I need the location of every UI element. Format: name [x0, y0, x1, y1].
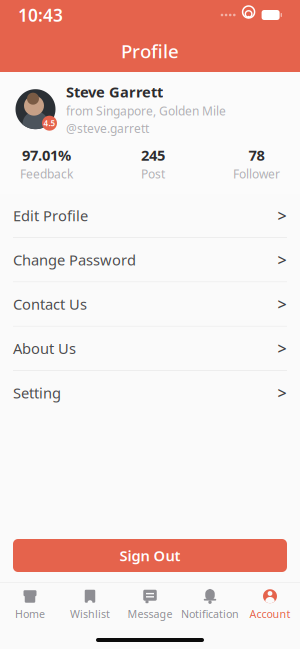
staticText: Message: [127, 607, 172, 621]
staticText: Setting: [13, 383, 61, 402]
staticText: >: [277, 249, 286, 270]
staticText: Account: [249, 607, 290, 621]
staticText: 245: [141, 145, 165, 165]
staticText: @steve.garrett: [66, 120, 149, 136]
staticText: >: [277, 205, 286, 226]
staticText: Contact Us: [13, 294, 87, 314]
button[interactable]: Wishlist: [60, 587, 120, 623]
staticText: Post: [141, 166, 165, 182]
button[interactable]: Home: [0, 587, 60, 623]
staticText: Notification: [181, 607, 239, 621]
staticText: Wishlist: [70, 607, 110, 621]
staticText: Profile: [121, 39, 179, 63]
staticText: Sign Out: [119, 546, 180, 565]
staticText: About Us: [13, 339, 76, 358]
staticText: Change Password: [13, 250, 136, 270]
staticText: Feedback: [20, 166, 73, 182]
button[interactable]: Account: [240, 587, 300, 623]
staticText: 10:43: [18, 3, 63, 26]
button[interactable]: About Us: [0, 327, 300, 370]
button[interactable]: Setting: [0, 371, 300, 414]
staticText: Home: [15, 607, 45, 621]
button[interactable]: Edit Profile: [0, 194, 300, 237]
staticText: 4.5: [43, 118, 55, 128]
button[interactable]: Sign Out: [13, 539, 287, 572]
staticText: 97.01%: [22, 145, 71, 165]
staticText: Follower: [233, 166, 280, 182]
button[interactable]: Change Password: [0, 238, 300, 282]
staticText: >: [277, 293, 286, 315]
staticText: Steve Garrett: [66, 82, 163, 101]
button[interactable]: Contact Us: [0, 282, 300, 326]
staticText: 78: [248, 145, 264, 165]
staticText: >: [277, 382, 286, 403]
staticText: from Singapore, Golden Mile: [66, 103, 226, 119]
staticText: >: [277, 338, 286, 359]
button[interactable]: Notification: [180, 587, 240, 623]
button[interactable]: Message: [120, 587, 180, 623]
staticText: Edit Profile: [13, 206, 88, 225]
